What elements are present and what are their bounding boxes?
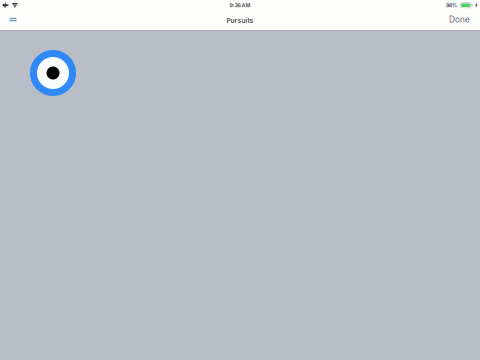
staticText: 96% — [446, 2, 457, 8]
staticText: Done — [449, 15, 470, 25]
staticText: 9:36 AM — [229, 2, 250, 8]
button[interactable]: Done — [439, 9, 470, 31]
staticText: Pursuits — [226, 16, 253, 25]
button[interactable]: Menu — [2, 11, 24, 29]
